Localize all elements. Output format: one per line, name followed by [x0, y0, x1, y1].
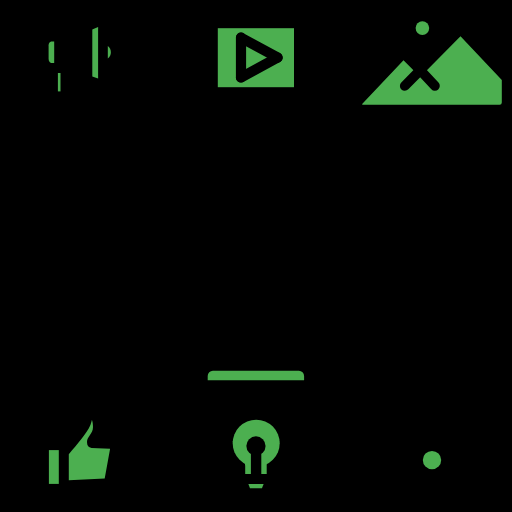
button[interactable]: More [400, 428, 464, 492]
button[interactable]: Collapse [196, 356, 316, 396]
button[interactable]: Like [36, 410, 124, 496]
button[interactable]: Play video [210, 20, 302, 96]
button[interactable]: Ideas [224, 412, 296, 496]
button[interactable]: Audio levels [30, 18, 126, 104]
button[interactable]: Photos [356, 16, 512, 110]
